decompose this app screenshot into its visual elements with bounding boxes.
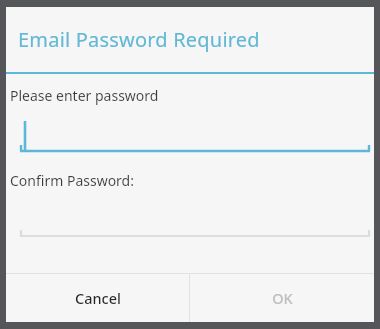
- staticText: Cancel: [75, 288, 121, 308]
- button[interactable]: Confirm password input field: [6, 204, 374, 240]
- staticText: Email Password Required: [18, 26, 260, 53]
- button[interactable]: Password input field: [6, 119, 374, 155]
- button[interactable]: OK: [190, 274, 374, 322]
- staticText: Confirm Password:: [10, 171, 134, 190]
- button[interactable]: Cancel: [6, 274, 189, 322]
- staticText: OK: [272, 288, 293, 308]
- staticText: Please enter password: [10, 86, 159, 105]
